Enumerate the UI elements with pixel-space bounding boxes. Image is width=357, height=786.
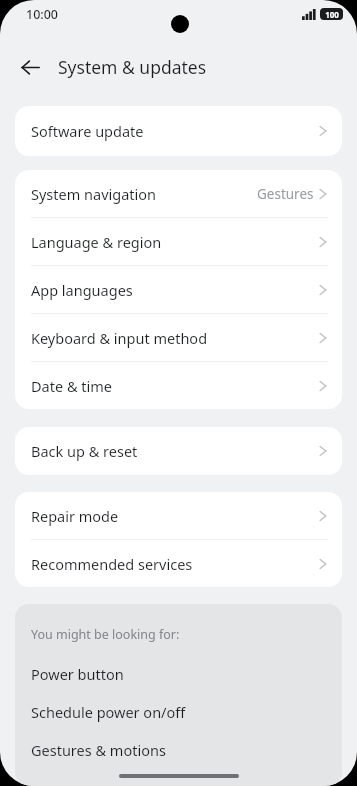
staticText: Date & time [31, 376, 112, 396]
staticText: Power button [31, 664, 124, 684]
staticText: Recommended services [31, 554, 193, 574]
button[interactable]: System navigation [15, 170, 342, 217]
staticText: System navigation [31, 184, 157, 204]
staticText: You might be looking for: [31, 626, 180, 643]
button[interactable]: Back [13, 50, 47, 84]
button[interactable]: Language & region [15, 218, 342, 265]
button[interactable]: Repair mode [15, 492, 342, 539]
staticText: Software update [31, 121, 144, 141]
button[interactable]: Date & time [15, 362, 342, 409]
staticText: Keyboard & input method [31, 328, 208, 348]
button[interactable]: Keyboard & input method [15, 314, 342, 361]
staticText: 100 [325, 9, 339, 20]
staticText: Language & region [31, 232, 162, 252]
staticText: System & updates [58, 55, 207, 79]
staticText: Gestures [257, 185, 314, 203]
staticText: Back up & reset [31, 441, 138, 461]
button[interactable]: Power button [15, 659, 342, 689]
staticText: Repair mode [31, 506, 119, 526]
button[interactable]: Recommended services [15, 540, 342, 587]
button[interactable]: Gestures & motions [15, 735, 342, 765]
button[interactable]: Software update [15, 106, 342, 156]
staticText: Gestures & motions [31, 740, 166, 760]
staticText: Schedule power on/off [31, 702, 186, 722]
button[interactable]: Back up & reset [15, 427, 342, 475]
staticText: App languages [31, 280, 133, 300]
button[interactable]: Schedule power on/off [15, 697, 342, 727]
button[interactable]: App languages [15, 266, 342, 313]
staticText: 10:00 [26, 6, 59, 23]
